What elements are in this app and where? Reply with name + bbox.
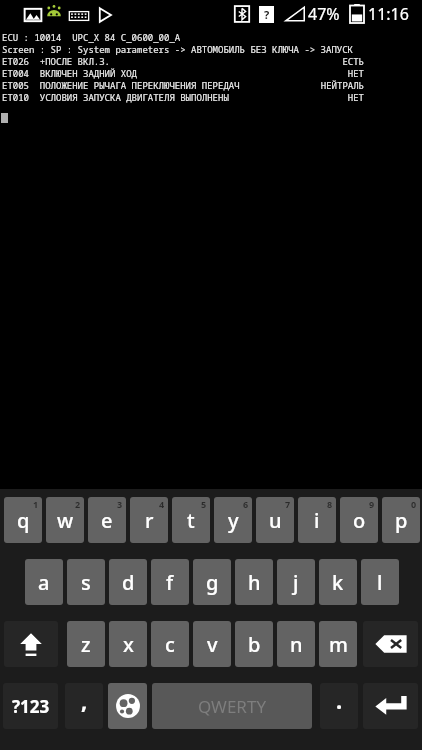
staticText: t [187, 507, 195, 534]
staticText: f [166, 569, 174, 596]
staticText: 1 [33, 498, 39, 510]
staticText: 7 [285, 498, 291, 510]
button[interactable]: n [277, 621, 315, 667]
button[interactable]: m [319, 621, 357, 667]
staticText: ECU : 10014 UPC_X 84 C_0600_00_A [2, 31, 181, 43]
staticText: c [165, 631, 175, 658]
staticText: m [329, 631, 348, 658]
button[interactable]: j [277, 559, 315, 605]
button[interactable]: x [109, 621, 147, 667]
button[interactable]: QWERTY [152, 683, 312, 729]
button[interactable]: h [235, 559, 273, 605]
staticText: p [395, 507, 408, 534]
button[interactable]: Symbols [3, 683, 58, 729]
staticText: l [377, 569, 383, 596]
button[interactable]: z [67, 621, 105, 667]
staticText: . [336, 685, 343, 715]
staticText: y [228, 507, 239, 534]
button[interactable]: o [340, 497, 378, 543]
staticText: n [290, 631, 303, 658]
staticText: 4 [159, 498, 165, 510]
button[interactable]: d [109, 559, 147, 605]
button[interactable]: s [67, 559, 105, 605]
button[interactable]: Change language [108, 683, 147, 729]
staticText: 5 [201, 498, 207, 510]
staticText: x [123, 631, 134, 658]
button[interactable]: b [235, 621, 273, 667]
button[interactable]: t [172, 497, 210, 543]
staticText: 6 [243, 498, 249, 510]
staticText: ET005 ПОЛОЖЕНИЕ РЫЧАГА ПЕРЕКЛЮЧЕНИЯ ПЕРЕ… [2, 79, 240, 91]
staticText: 3 [117, 498, 123, 510]
staticText: j [293, 569, 299, 596]
button[interactable]: c [151, 621, 189, 667]
button[interactable]: l [361, 559, 399, 605]
button[interactable]: g [193, 559, 231, 605]
staticText: o [353, 507, 366, 534]
staticText: z [81, 631, 91, 658]
button[interactable]: v [193, 621, 231, 667]
button[interactable]: Backspace [363, 621, 418, 667]
button[interactable]: r [130, 497, 168, 543]
button[interactable]: a [25, 559, 63, 605]
staticText: a [38, 569, 50, 596]
button[interactable]: u [256, 497, 294, 543]
button[interactable]: Period [320, 683, 358, 729]
staticText: НЕЙТРАЛЬ [0, 79, 364, 91]
staticText: r [145, 507, 154, 534]
staticText: v [207, 631, 218, 658]
staticText: q [17, 507, 30, 534]
staticText: , [81, 685, 88, 715]
button[interactable]: y [214, 497, 252, 543]
staticText: QWERTY [198, 695, 267, 718]
staticText: b [248, 631, 261, 658]
button[interactable]: f [151, 559, 189, 605]
button[interactable]: w [46, 497, 84, 543]
button[interactable]: i [298, 497, 336, 543]
button[interactable]: p [382, 497, 420, 543]
staticText: ET004 ВКЛЮЧЕН ЗАДНИЙ ХОД [2, 67, 138, 79]
button[interactable]: Shift [4, 621, 58, 667]
button[interactable]: k [319, 559, 357, 605]
staticText: ET026 +ПОСЛЕ ВКЛ.З. [2, 55, 111, 67]
button[interactable]: Enter [363, 683, 418, 729]
button[interactable]: e [88, 497, 126, 543]
button[interactable]: Comma [65, 683, 103, 729]
staticText: g [206, 569, 219, 596]
staticText: 8 [327, 498, 333, 510]
staticText: s [81, 569, 91, 596]
staticText: НЕТ [0, 67, 364, 79]
staticText: ?123 [12, 695, 50, 718]
staticText: h [248, 569, 261, 596]
staticText: 0 [411, 498, 417, 510]
staticText: 11:16 [368, 3, 409, 25]
staticText: d [122, 569, 135, 596]
staticText: НЕТ [0, 91, 364, 103]
staticText: 47% [308, 3, 340, 25]
staticText: e [101, 507, 113, 534]
button[interactable]: q [4, 497, 42, 543]
staticText: Screen : SP : System parameters -> АВТОМ… [2, 43, 354, 55]
staticText: i [314, 507, 320, 534]
staticText: 2 [75, 498, 81, 510]
staticText: ? [264, 7, 270, 22]
staticText: 9 [369, 498, 375, 510]
staticText: u [269, 507, 282, 534]
staticText: ET010 УСЛОВИЯ ЗАПУСКА ДВИГАТЕЛЯ ВЫПОЛНЕН… [2, 91, 229, 103]
staticText: ЕСТЬ [0, 55, 364, 67]
staticText: k [332, 569, 344, 596]
staticText: w [57, 507, 74, 534]
